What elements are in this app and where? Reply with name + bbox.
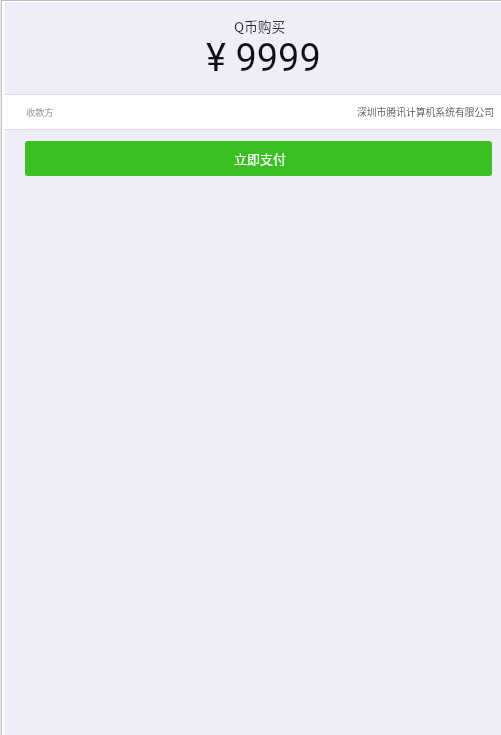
- staticText: 立即支付: [234, 149, 287, 168]
- button[interactable]: 立即支付: [25, 141, 492, 176]
- staticText: ¥ 9999: [206, 36, 321, 81]
- staticText: Q币购买: [234, 16, 286, 36]
- button[interactable]: 收款方 深圳市腾讯计算机系统有限公司: [4, 95, 501, 130]
- staticText: 收款方: [26, 105, 54, 118]
- staticText: 深圳市腾讯计算机系统有限公司: [357, 105, 495, 119]
